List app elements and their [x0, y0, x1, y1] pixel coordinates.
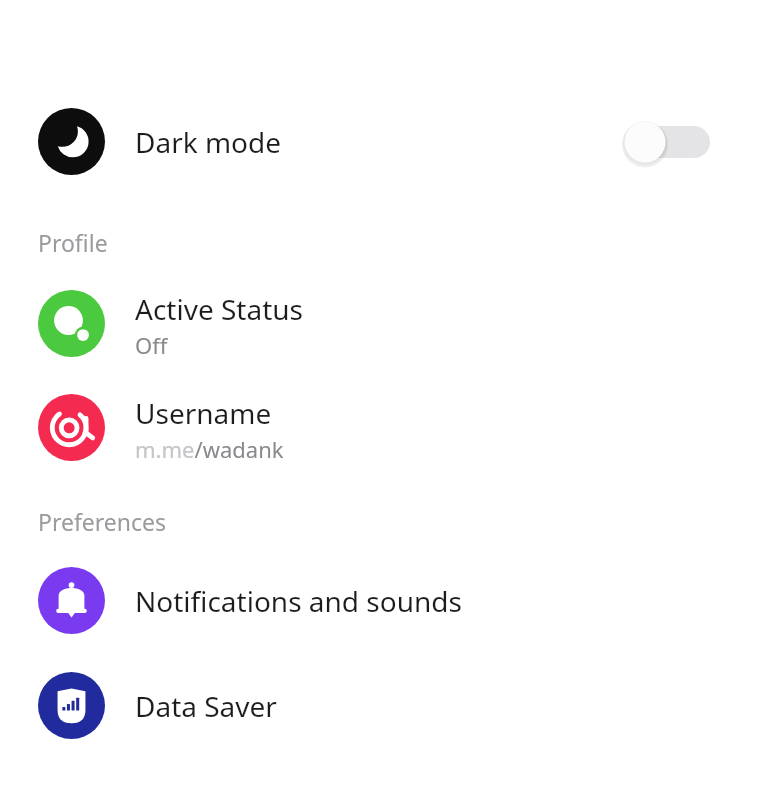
staticText: Data Saver — [135, 687, 277, 725]
staticText: Profile — [38, 227, 108, 257]
button[interactable]: Dark mode — [0, 108, 768, 175]
staticText: Active Status — [135, 290, 303, 328]
button[interactable]: Username — [0, 394, 768, 461]
button[interactable]: Data Saver — [0, 672, 768, 739]
staticText: Dark mode — [135, 123, 282, 161]
staticText: Username — [135, 394, 272, 432]
button[interactable]: Active Status — [0, 290, 768, 357]
staticText: Preferences — [38, 506, 167, 536]
button[interactable]: Notifications and sounds — [0, 567, 768, 634]
staticText: Notifications and sounds — [135, 582, 462, 620]
staticText: Off — [135, 330, 168, 357]
button[interactable]: Toggle dark mode — [621, 108, 727, 175]
staticText: m.me/wadank — [135, 434, 284, 461]
